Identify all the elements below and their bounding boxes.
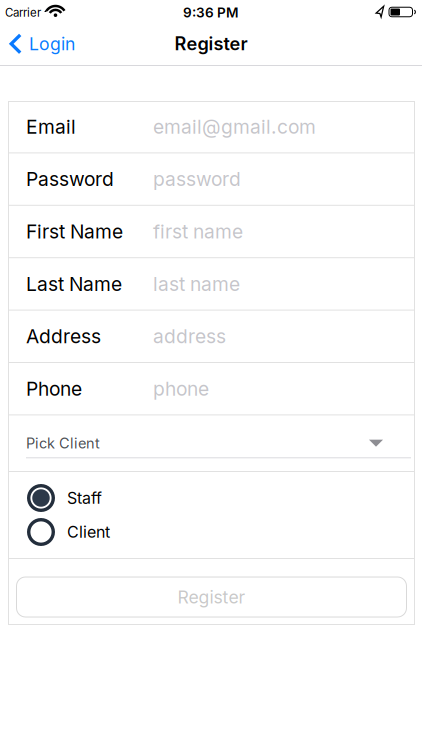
- staticText: Pick Client: [26, 434, 100, 452]
- staticText: Login: [29, 33, 75, 54]
- button[interactable]: Login: [9, 33, 75, 54]
- staticText: phone: [153, 377, 209, 400]
- staticText: password: [153, 167, 241, 191]
- button[interactable]: Email: [8, 101, 415, 152]
- staticText: address: [153, 325, 226, 348]
- staticText: Carrier: [5, 6, 41, 19]
- staticText: Client: [67, 522, 110, 542]
- staticText: Register: [177, 586, 245, 608]
- button[interactable]: Staff: [8, 484, 415, 512]
- button[interactable]: Client: [8, 518, 415, 546]
- button[interactable]: First Name: [8, 206, 415, 257]
- staticText: first name: [153, 220, 243, 243]
- staticText: Staff: [67, 488, 102, 508]
- button[interactable]: Pick Client: [8, 415, 415, 471]
- staticText: Email: [26, 115, 76, 138]
- button[interactable]: Phone: [8, 363, 415, 414]
- button[interactable]: Last Name: [8, 258, 415, 310]
- staticText: Phone: [26, 377, 82, 400]
- staticText: Password: [26, 167, 114, 191]
- staticText: First Name: [26, 220, 123, 243]
- button[interactable]: Password: [8, 153, 415, 205]
- staticText: last name: [153, 272, 240, 295]
- staticText: email@gmail.com: [153, 115, 316, 138]
- button[interactable]: Register: [16, 576, 407, 617]
- staticText: 9:36 PM: [183, 4, 239, 21]
- staticText: Last Name: [26, 272, 122, 295]
- staticText: Address: [26, 325, 101, 348]
- button[interactable]: Address: [8, 311, 415, 362]
- staticText: Register: [174, 33, 247, 55]
